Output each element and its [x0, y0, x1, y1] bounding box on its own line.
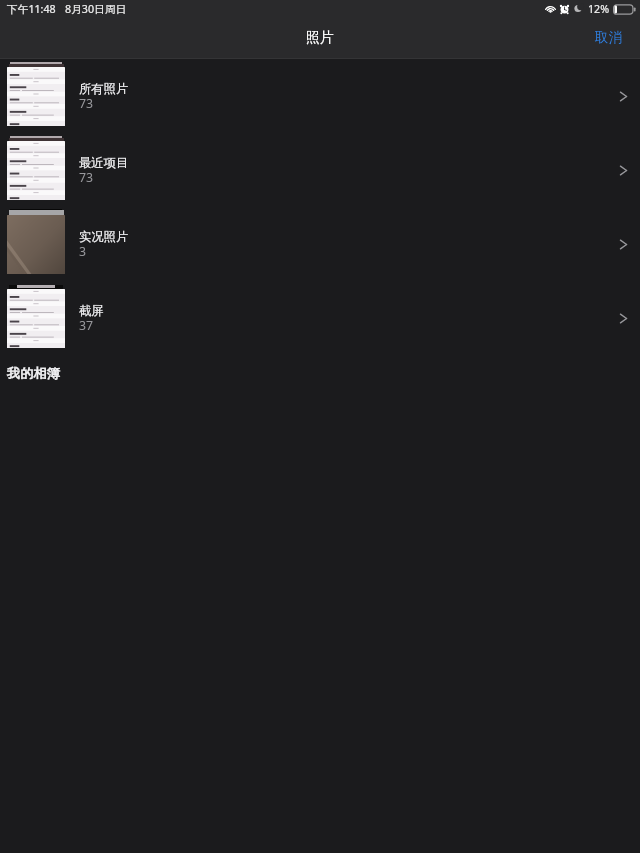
- staticText: 8月30日周日: [65, 2, 127, 17]
- staticText: 最近项目: [79, 155, 129, 170]
- staticText: 实况照片: [79, 229, 129, 244]
- button[interactable]: 最近项目: [0, 133, 640, 207]
- staticText: 取消: [595, 29, 622, 46]
- other: Open album: [619, 239, 628, 250]
- staticText: 照片: [306, 29, 334, 47]
- staticText: 12%: [588, 2, 610, 17]
- staticText: 3: [79, 243, 87, 260]
- other: Open album: [619, 91, 628, 102]
- staticText: 37: [79, 317, 94, 334]
- staticText: 73: [79, 169, 94, 186]
- staticText: 我的相簿: [7, 365, 60, 382]
- button[interactable]: 取消: [585, 0, 640, 54]
- other: Open album: [619, 313, 628, 324]
- other: Open album: [619, 165, 628, 176]
- staticText: 下午11:48: [7, 2, 56, 17]
- staticText: 截屏: [79, 303, 104, 318]
- button[interactable]: 实况照片: [0, 207, 640, 281]
- button[interactable]: 所有照片: [0, 59, 640, 133]
- button[interactable]: 截屏: [0, 281, 640, 355]
- staticText: 73: [79, 95, 94, 112]
- staticText: 所有照片: [79, 81, 129, 96]
